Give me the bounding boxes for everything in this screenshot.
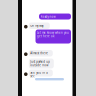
- staticText: Ready now: [40, 15, 55, 18]
- staticText: On my way: [30, 24, 43, 27]
- staticText: Let me know when you get here ok: [37, 31, 69, 38]
- staticText: Almost there: [30, 51, 48, 55]
- staticText: See you in a sec: [30, 71, 47, 78]
- staticText: Just parked up outside now: [30, 60, 50, 67]
